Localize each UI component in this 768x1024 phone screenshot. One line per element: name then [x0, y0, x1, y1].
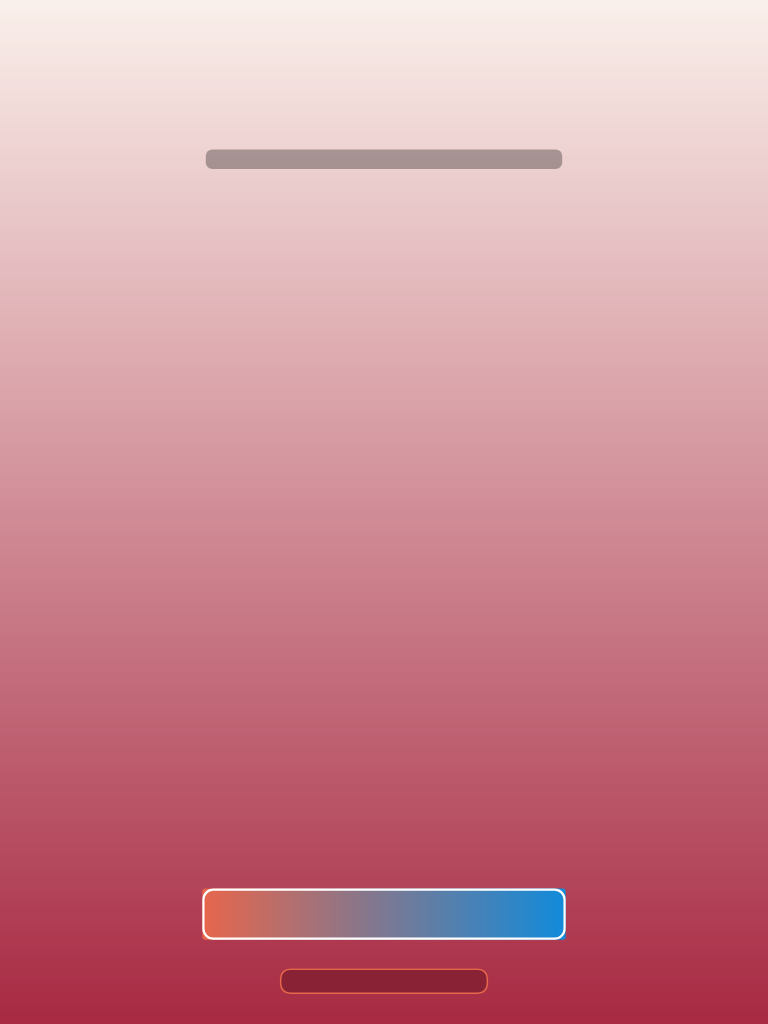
button[interactable]: Skip	[280, 968, 488, 994]
button[interactable]: Continue	[202, 889, 565, 940]
